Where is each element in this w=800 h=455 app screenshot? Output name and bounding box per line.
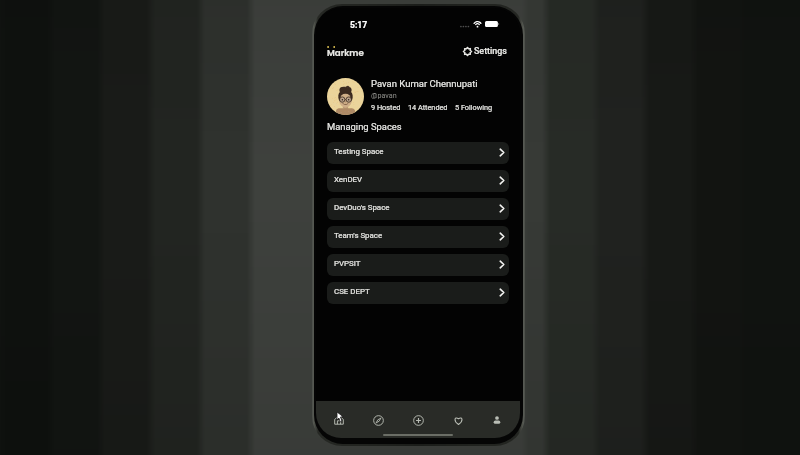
staticText: Markme bbox=[327, 47, 364, 59]
staticText: 5:17 bbox=[350, 20, 368, 30]
staticText: Pavan Kumar Chennupati bbox=[371, 78, 478, 89]
button[interactable]: Profile bbox=[486, 409, 508, 431]
staticText: 5 Following bbox=[455, 103, 493, 112]
button[interactable]: Explore bbox=[367, 409, 389, 431]
button[interactable]: DevDuo's Space bbox=[327, 198, 509, 220]
button[interactable]: Markme bbox=[325, 43, 366, 57]
button[interactable]: Team's Space bbox=[327, 226, 509, 248]
staticText: PVPSIT bbox=[334, 259, 361, 268]
staticText: XenDEV bbox=[334, 175, 363, 184]
button[interactable]: PVPSIT bbox=[327, 254, 509, 276]
staticText: @pavan bbox=[371, 91, 397, 99]
button[interactable]: Home bbox=[328, 409, 350, 431]
button[interactable]: Testing Space bbox=[327, 142, 509, 164]
button[interactable]: CSE DEPT bbox=[327, 282, 509, 304]
button[interactable]: XenDEV bbox=[327, 170, 509, 192]
staticText: 9 Hosted bbox=[371, 103, 401, 112]
staticText: DevDuo's Space bbox=[334, 203, 390, 212]
button[interactable]: Favorites bbox=[447, 409, 469, 431]
staticText: CSE DEPT bbox=[334, 287, 370, 296]
staticText: Settings bbox=[474, 46, 507, 56]
button[interactable]: Settings bbox=[461, 44, 509, 58]
staticText: Testing Space bbox=[334, 147, 384, 156]
button[interactable]: Profile photo bbox=[327, 78, 364, 115]
staticText: Managing Spaces bbox=[327, 121, 402, 132]
button[interactable]: Create bbox=[407, 409, 429, 431]
staticText: 14 Attended bbox=[408, 103, 448, 112]
staticText: Team's Space bbox=[334, 231, 383, 240]
